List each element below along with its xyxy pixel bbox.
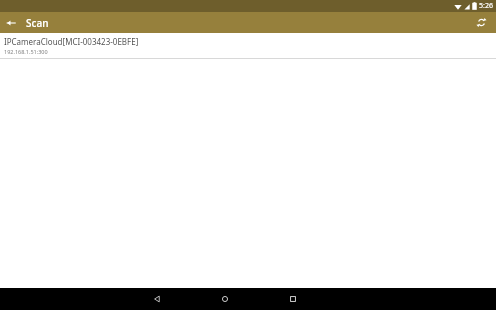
staticText: Scan bbox=[26, 16, 49, 30]
button[interactable]: IPCameraCloud[MCI-003423-0EBFE] bbox=[0, 33, 496, 59]
button[interactable]: Back bbox=[147, 289, 167, 309]
staticText: 5:26 bbox=[479, 1, 493, 11]
button[interactable]: Home bbox=[215, 289, 235, 309]
button[interactable]: Back bbox=[0, 12, 21, 33]
staticText: IPCameraCloud[MCI-003423-0EBFE] bbox=[4, 36, 139, 47]
staticText: 192.168.1.51:300 bbox=[4, 48, 48, 55]
button[interactable]: Recent apps bbox=[283, 289, 303, 309]
button[interactable]: Refresh bbox=[471, 12, 492, 33]
